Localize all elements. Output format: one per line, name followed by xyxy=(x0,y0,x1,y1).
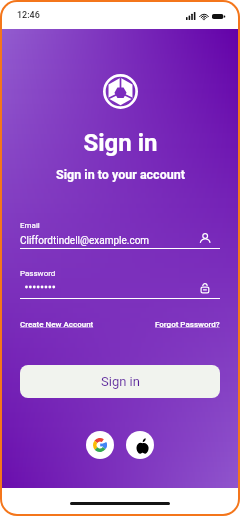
staticText: Password xyxy=(20,269,56,278)
button[interactable]: Sign in with Google xyxy=(86,431,114,459)
button[interactable]: Forgot Password? xyxy=(155,320,220,329)
button[interactable]: Sign in xyxy=(20,365,220,398)
button[interactable]: Create New Account xyxy=(20,320,94,329)
staticText: Cliffordtindell@example.com xyxy=(20,235,200,247)
staticText: Email xyxy=(20,221,40,230)
staticText: Sign in xyxy=(101,374,140,389)
staticText: Sign in to your account xyxy=(56,167,185,182)
button[interactable]: Sign in with Apple xyxy=(126,431,154,459)
staticText: 12:46 xyxy=(17,10,40,21)
staticText: Sign in xyxy=(83,129,158,157)
